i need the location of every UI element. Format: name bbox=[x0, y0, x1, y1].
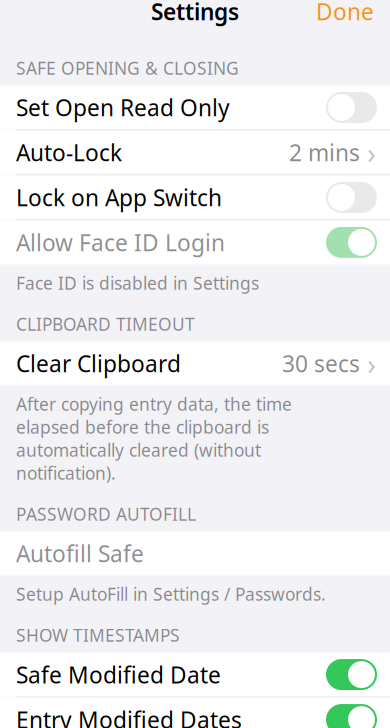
staticText: Entry Modified Dates bbox=[16, 704, 242, 728]
staticText: › bbox=[367, 344, 376, 383]
staticText: SHOW TIMESTAMPS bbox=[16, 624, 180, 647]
staticText: 30 secs bbox=[282, 348, 360, 378]
staticText: Setup AutoFill in Settings / Passwords. bbox=[16, 583, 326, 606]
staticText: CLIPBOARD TIMEOUT bbox=[16, 312, 195, 335]
staticText: Done bbox=[316, 0, 374, 26]
button[interactable]: Autofill Safe bbox=[0, 532, 390, 576]
staticText: Face ID is disabled in Settings bbox=[16, 271, 259, 294]
staticText: Set Open Read Only bbox=[16, 92, 230, 122]
button[interactable]: Safe Modified Date bbox=[0, 653, 390, 697]
button[interactable]: Auto-Lock bbox=[0, 130, 390, 174]
staticText: Allow Face ID Login bbox=[16, 227, 225, 257]
staticText: PASSWORD AUTOFILL bbox=[16, 502, 196, 525]
button[interactable]: Done bbox=[300, 0, 390, 34]
staticText: Autofill Safe bbox=[16, 538, 144, 569]
staticText: SAFE OPENING & CLOSING bbox=[16, 56, 239, 79]
button[interactable]: Allow Face ID Login bbox=[0, 220, 390, 264]
staticText: › bbox=[367, 133, 376, 172]
button[interactable]: Entry Modified Dates bbox=[0, 698, 390, 728]
staticText: Safe Modified Date bbox=[16, 659, 221, 690]
staticText: Lock on App Switch bbox=[16, 182, 222, 212]
button[interactable]: Set Open Read Only bbox=[0, 85, 390, 129]
button[interactable]: Lock on App Switch bbox=[0, 175, 390, 219]
staticText: Settings bbox=[151, 0, 239, 26]
staticText: Clear Clipboard bbox=[16, 348, 181, 378]
staticText: After copying entry data, the time elaps… bbox=[16, 392, 292, 485]
staticText: Auto-Lock bbox=[16, 137, 122, 167]
staticText: 2 mins bbox=[289, 137, 360, 167]
button[interactable]: Clear Clipboard bbox=[0, 341, 390, 385]
